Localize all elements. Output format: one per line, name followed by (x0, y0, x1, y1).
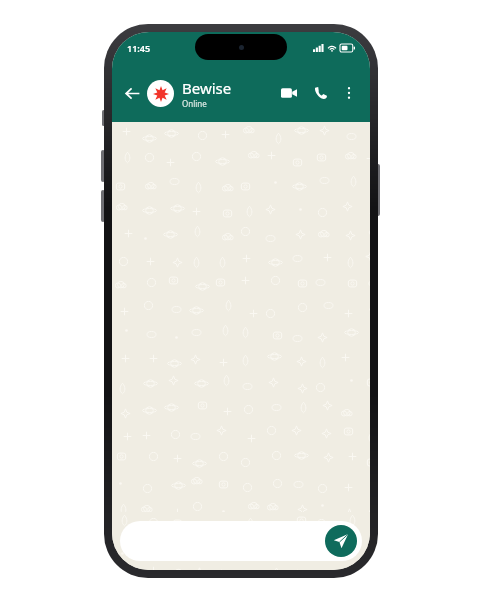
button[interactable]: Profile photo (147, 80, 174, 107)
button[interactable]: Message input (120, 521, 362, 561)
button[interactable]: Send (325, 525, 357, 557)
staticText: Bewise (182, 78, 232, 98)
button[interactable]: Back (119, 80, 145, 106)
button[interactable]: Bewise (182, 78, 275, 109)
button[interactable]: Video call (275, 79, 303, 107)
staticText: 11:45 (127, 42, 151, 54)
staticText: Online (182, 98, 207, 109)
button[interactable]: Voice call (307, 79, 335, 107)
button[interactable]: More options (337, 81, 361, 105)
